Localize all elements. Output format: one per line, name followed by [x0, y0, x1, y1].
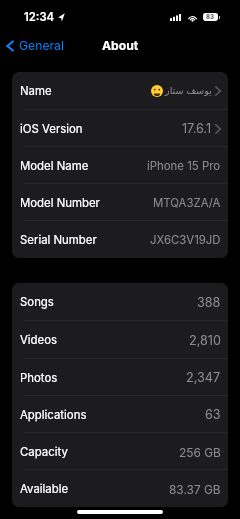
staticText: 388 [197, 295, 221, 310]
button[interactable]: Applications [12, 396, 228, 433]
staticText: Model Number [20, 196, 100, 210]
staticText: Capacity [20, 445, 68, 459]
staticText: MTQA3ZA/A [153, 196, 221, 210]
staticText: يوسف ستار [165, 85, 212, 97]
other: Location services [58, 13, 65, 22]
button[interactable]: Photos [12, 359, 228, 396]
button[interactable]: Serial Number [12, 221, 228, 258]
staticText: iPhone 15 Pro [147, 159, 221, 173]
staticText: 2,347 [186, 370, 221, 385]
staticText: 256 GB [179, 445, 221, 459]
staticText: 17.6.1 [182, 121, 212, 136]
staticText: Available [20, 482, 69, 496]
button[interactable]: iOS Version [12, 110, 228, 147]
button[interactable]: Model Number [12, 184, 228, 221]
staticText: 83.37 GB [169, 482, 221, 496]
button[interactable]: Available [12, 470, 228, 507]
button[interactable]: Videos [12, 321, 228, 359]
staticText: 83 [206, 13, 215, 21]
staticText: Songs [20, 295, 54, 309]
other: Wi-Fi [188, 14, 197, 21]
other: Cellular signal [170, 14, 181, 21]
staticText: General [19, 38, 64, 53]
staticText: Model Name [20, 159, 89, 173]
staticText: iOS Version [20, 122, 83, 136]
staticText: Name [20, 84, 52, 98]
staticText: Applications [20, 408, 87, 422]
staticText: 12:34 [24, 10, 55, 24]
staticText: Serial Number [20, 233, 97, 247]
other: Battery 83 percent [203, 13, 218, 21]
staticText: About [102, 38, 139, 53]
staticText: 63 [205, 407, 221, 422]
button[interactable]: Model Name [12, 147, 228, 184]
button[interactable]: Songs [12, 283, 228, 321]
button[interactable]: Name [12, 72, 228, 110]
staticText: Photos [20, 371, 58, 385]
staticText: Videos [20, 333, 58, 347]
staticText: 2,810 [189, 333, 221, 348]
button[interactable]: Capacity [12, 433, 228, 470]
staticText: JX6C3V19JD [150, 233, 221, 247]
button[interactable]: General [5, 35, 65, 56]
